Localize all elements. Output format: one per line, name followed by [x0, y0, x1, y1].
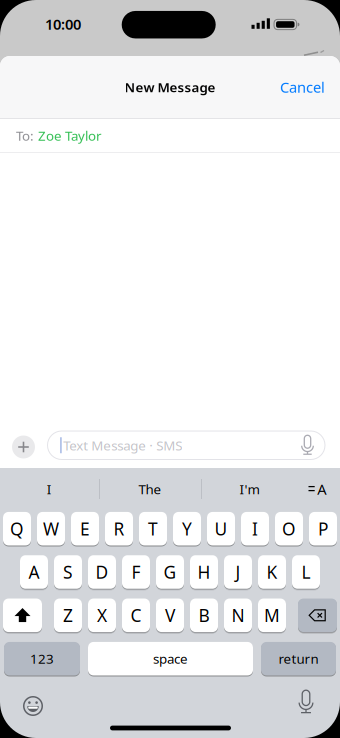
- button[interactable]: V: [156, 598, 184, 632]
- button[interactable]: C: [122, 598, 150, 632]
- staticText: A: [28, 560, 39, 583]
- button[interactable]: K: [258, 555, 286, 589]
- button[interactable]: Dictation: [293, 689, 319, 721]
- staticText: return: [278, 650, 318, 667]
- button[interactable]: R: [105, 512, 133, 545]
- button[interactable]: X: [88, 598, 116, 632]
- staticText: Cancel: [280, 77, 325, 97]
- staticText: J: [235, 560, 240, 583]
- staticText: N: [231, 604, 244, 627]
- staticText: Q: [10, 517, 24, 540]
- staticText: L: [301, 560, 310, 583]
- staticText: A: [317, 479, 326, 499]
- button[interactable]: I: [241, 512, 269, 545]
- staticText: M: [264, 604, 280, 627]
- staticText: B: [198, 604, 209, 627]
- button[interactable]: B: [190, 598, 218, 632]
- button[interactable]: T: [139, 512, 167, 545]
- button[interactable]: L: [292, 555, 320, 589]
- staticText: The: [138, 480, 161, 498]
- button[interactable]: E: [71, 512, 99, 545]
- button[interactable]: S: [54, 555, 82, 589]
- staticText: C: [130, 604, 141, 627]
- button[interactable]: Delete: [298, 598, 337, 632]
- button[interactable]: J: [224, 555, 252, 589]
- button[interactable]: Emoji: [22, 695, 44, 717]
- button[interactable]: U: [207, 512, 235, 545]
- button[interactable]: Cancel: [280, 77, 325, 97]
- button[interactable]: space: [88, 642, 253, 675]
- staticText: space: [153, 650, 188, 667]
- staticText: Z: [63, 604, 73, 627]
- button[interactable]: A: [20, 555, 48, 589]
- staticText: U: [214, 517, 227, 540]
- button[interactable]: I'm: [202, 471, 297, 507]
- button[interactable]: 123: [4, 642, 80, 675]
- staticText: K: [266, 560, 277, 583]
- staticText: New Message: [124, 78, 215, 96]
- button[interactable]: return: [261, 642, 336, 675]
- staticText: Text Message · SMS: [63, 436, 182, 454]
- staticText: I: [252, 517, 258, 540]
- staticText: F: [131, 560, 140, 583]
- staticText: 10:00: [45, 14, 81, 34]
- button[interactable]: F: [122, 555, 150, 589]
- button[interactable]: To: Zoe Taylor: [0, 119, 340, 152]
- staticText: S: [63, 560, 73, 583]
- button[interactable]: Q: [3, 512, 31, 545]
- staticText: V: [165, 604, 175, 627]
- staticText: X: [97, 604, 107, 627]
- button[interactable]: M: [258, 598, 286, 632]
- button[interactable]: P: [309, 512, 337, 545]
- button[interactable]: The: [102, 471, 197, 507]
- staticText: Zoe Taylor: [38, 127, 102, 144]
- staticText: H: [197, 560, 210, 583]
- staticText: P: [318, 517, 328, 540]
- button[interactable]: Predictive text options: [308, 482, 327, 496]
- staticText: T: [148, 517, 158, 540]
- button[interactable]: Text Message: [47, 431, 325, 459]
- staticText: E: [80, 517, 90, 540]
- staticText: I'm: [239, 480, 259, 498]
- staticText: G: [163, 560, 176, 583]
- staticText: Y: [182, 517, 192, 540]
- button[interactable]: H: [190, 555, 218, 589]
- button[interactable]: Z: [54, 598, 82, 632]
- staticText: I: [47, 480, 52, 498]
- button[interactable]: O: [275, 512, 303, 545]
- button[interactable]: Y: [173, 512, 201, 545]
- staticText: W: [43, 517, 59, 540]
- button[interactable]: N: [224, 598, 252, 632]
- button[interactable]: I: [2, 471, 97, 507]
- staticText: O: [282, 517, 296, 540]
- button[interactable]: W: [37, 512, 65, 545]
- staticText: D: [95, 560, 108, 583]
- button[interactable]: G: [156, 555, 184, 589]
- button[interactable]: Shift: [3, 598, 42, 632]
- staticText: R: [113, 517, 124, 540]
- staticText: To:: [16, 127, 34, 144]
- staticText: 123: [30, 650, 54, 667]
- button[interactable]: Apps: [12, 435, 35, 458]
- button[interactable]: D: [88, 555, 116, 589]
